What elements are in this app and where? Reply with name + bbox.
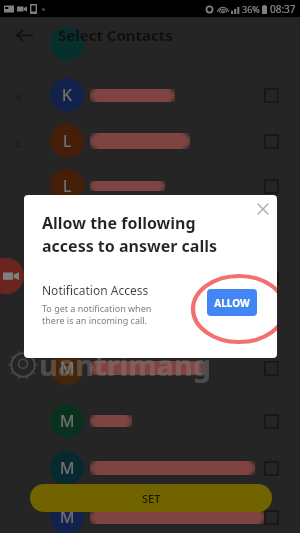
staticText: uantrimang bbox=[39, 345, 212, 384]
button[interactable]: M bbox=[50, 261, 84, 295]
button[interactable]: Back bbox=[8, 20, 38, 50]
staticText: M bbox=[60, 267, 75, 289]
staticText: M bbox=[60, 410, 75, 432]
staticText: To get a notification when there is an i… bbox=[42, 302, 152, 327]
button[interactable]: Select contact bbox=[260, 175, 282, 197]
button[interactable]: Select contact bbox=[260, 410, 282, 432]
staticText: L bbox=[63, 175, 72, 197]
button[interactable] bbox=[50, 27, 84, 61]
staticText: Notification Access bbox=[42, 282, 149, 298]
button[interactable]: Select contact bbox=[260, 457, 282, 479]
staticText: L bbox=[16, 135, 22, 150]
staticText: 08:37 bbox=[270, 2, 296, 16]
staticText: M bbox=[60, 357, 75, 379]
button[interactable]: Select contact bbox=[260, 506, 282, 528]
staticText: 36% bbox=[242, 3, 260, 15]
button[interactable]: L bbox=[50, 124, 84, 158]
button[interactable]: Select contact bbox=[260, 267, 282, 289]
button[interactable]: L bbox=[50, 169, 84, 203]
button[interactable]: Select contact bbox=[260, 357, 282, 379]
button[interactable]: Select contact bbox=[260, 84, 282, 106]
button[interactable]: ALLOW bbox=[207, 289, 257, 316]
staticText: ALLOW bbox=[214, 296, 250, 310]
button[interactable]: Video call bbox=[0, 258, 24, 294]
staticText: M bbox=[60, 506, 75, 528]
button[interactable]: Select contact bbox=[260, 130, 282, 152]
button[interactable]: M bbox=[50, 351, 84, 385]
staticText: Select Contacts bbox=[58, 25, 173, 45]
staticText: K bbox=[62, 84, 72, 106]
staticText: L bbox=[63, 130, 72, 152]
button[interactable]: SET bbox=[30, 484, 272, 512]
staticText: K bbox=[16, 89, 23, 104]
staticText: M bbox=[60, 457, 75, 479]
button[interactable]: M bbox=[50, 451, 84, 485]
button[interactable]: Close bbox=[252, 198, 274, 220]
staticText: Allow the following access to answer cal… bbox=[42, 212, 217, 257]
button[interactable]: M bbox=[50, 404, 84, 438]
staticText: SET bbox=[142, 491, 161, 506]
button[interactable]: K bbox=[50, 78, 84, 112]
button[interactable]: M bbox=[50, 500, 84, 533]
